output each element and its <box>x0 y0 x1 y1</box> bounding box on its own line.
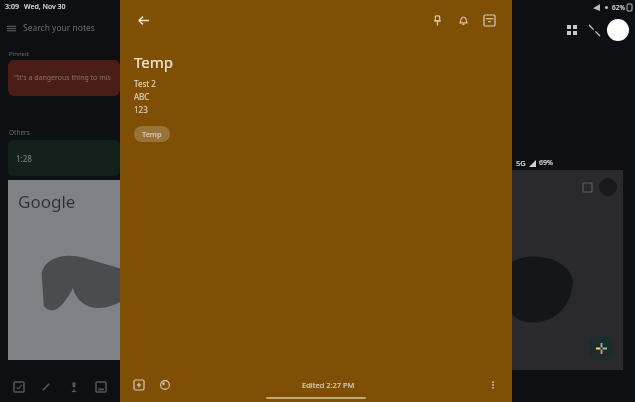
button[interactable]: Messages <box>579 179 595 195</box>
staticText: Temp <box>142 129 162 139</box>
button[interactable]: New drawing <box>37 378 55 396</box>
staticText: Google <box>18 190 76 213</box>
staticText: Temp <box>134 52 174 72</box>
staticText: 69% <box>539 158 553 168</box>
button[interactable]: Archive <box>476 7 502 33</box>
button[interactable]: "It's a dangerous thing to mis <box>8 60 120 96</box>
button[interactable]: Search your notes <box>6 17 120 39</box>
button[interactable]: Temp <box>134 126 170 142</box>
button[interactable]: Reminder <box>450 7 476 33</box>
button[interactable]: Change color <box>154 374 176 396</box>
button[interactable]: Collapse <box>583 19 605 41</box>
staticText: 62% <box>612 3 625 12</box>
button[interactable]: Account <box>599 178 617 196</box>
staticText: Others <box>9 128 30 137</box>
button[interactable]: New image note <box>92 378 110 396</box>
button[interactable]: New voice note <box>65 378 83 396</box>
staticText: ABC <box>134 91 150 102</box>
staticText: 5G <box>516 158 526 168</box>
staticText: 1:28 <box>16 153 32 164</box>
staticText: 3:09 <box>5 2 19 12</box>
button[interactable]: Add <box>128 374 150 396</box>
staticText: Test 2 <box>134 78 156 89</box>
button[interactable]: Profile <box>607 19 629 41</box>
staticText: 123 <box>134 104 148 115</box>
staticText: Edited 2:27 PM <box>302 380 355 390</box>
staticText: Wed, Nov 30 <box>24 2 66 12</box>
button[interactable]: App grid <box>561 19 583 41</box>
button[interactable]: Google <box>8 180 120 360</box>
staticText: "It's a dangerous thing to mis <box>14 73 111 83</box>
button[interactable]: New list <box>10 378 28 396</box>
button[interactable]: Back <box>130 7 156 33</box>
staticText: Pinned <box>9 50 29 58</box>
button[interactable]: 1:28 <box>8 140 120 176</box>
button[interactable]: Add <box>589 336 613 360</box>
button[interactable]: More options <box>482 374 504 396</box>
staticText: Search your notes <box>23 22 95 34</box>
button[interactable]: Pin note <box>424 7 450 33</box>
